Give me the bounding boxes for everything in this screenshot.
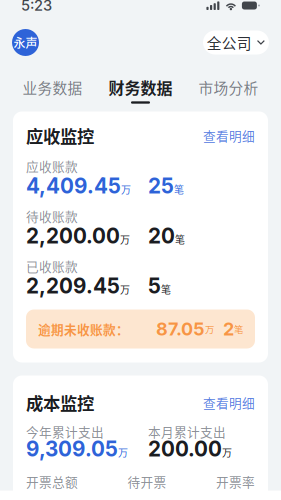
- staticText: 万: [121, 182, 131, 196]
- button[interactable]: 查看明细: [203, 126, 255, 145]
- staticText: 待收账款: [26, 207, 78, 225]
- staticText: 2,209.45: [26, 273, 120, 298]
- staticText: 万: [222, 445, 232, 459]
- staticText: 查看明细: [203, 393, 255, 412]
- button[interactable]: 查看明细: [203, 393, 255, 412]
- staticText: 开票总额: [26, 472, 78, 491]
- staticText: 今年累计支出: [26, 422, 104, 441]
- staticText: 待开票: [127, 472, 166, 491]
- staticText: 笔: [161, 282, 171, 296]
- staticText: 成本监控: [26, 390, 94, 415]
- staticText: 万: [205, 322, 214, 336]
- staticText: 开票率: [216, 472, 255, 491]
- staticText: 20: [148, 223, 175, 248]
- button[interactable]: 业务数据: [8, 80, 96, 104]
- staticText: 9,309.05: [26, 436, 118, 461]
- staticText: 笔: [174, 182, 184, 196]
- staticText: 笔: [175, 232, 185, 246]
- staticText: 5: [148, 273, 161, 298]
- staticText: 万: [120, 282, 130, 296]
- button[interactable]: 财务数据: [96, 80, 184, 104]
- staticText: 全公司: [207, 32, 252, 53]
- staticText: 财务数据: [108, 76, 172, 99]
- staticText: 逾期未收账款：: [38, 320, 129, 338]
- staticText: 笔: [234, 322, 243, 336]
- staticText: 5:23: [21, 0, 52, 14]
- staticText: 万: [120, 232, 130, 246]
- staticText: 应收监控: [26, 123, 94, 148]
- staticText: 业务数据: [22, 77, 82, 98]
- staticText: 已收账款: [26, 257, 78, 275]
- staticText: 查看明细: [203, 126, 255, 145]
- staticText: 应收账款: [26, 157, 78, 175]
- staticText: 万: [118, 445, 128, 459]
- staticText: 市场分析: [198, 77, 258, 98]
- staticText: 2,200.00: [26, 223, 120, 248]
- staticText: 4,409.45: [26, 173, 121, 198]
- staticText: 永声: [13, 34, 37, 51]
- button[interactable]: 全公司: [203, 30, 269, 54]
- button[interactable]: 永声 profile: [12, 29, 39, 56]
- staticText: 2: [223, 318, 234, 340]
- staticText: 200.00: [148, 436, 222, 461]
- staticText: 87.05: [156, 318, 205, 340]
- staticText: 本月累计支出: [148, 422, 226, 441]
- staticText: 25: [148, 173, 174, 198]
- button[interactable]: 市场分析: [184, 80, 272, 104]
